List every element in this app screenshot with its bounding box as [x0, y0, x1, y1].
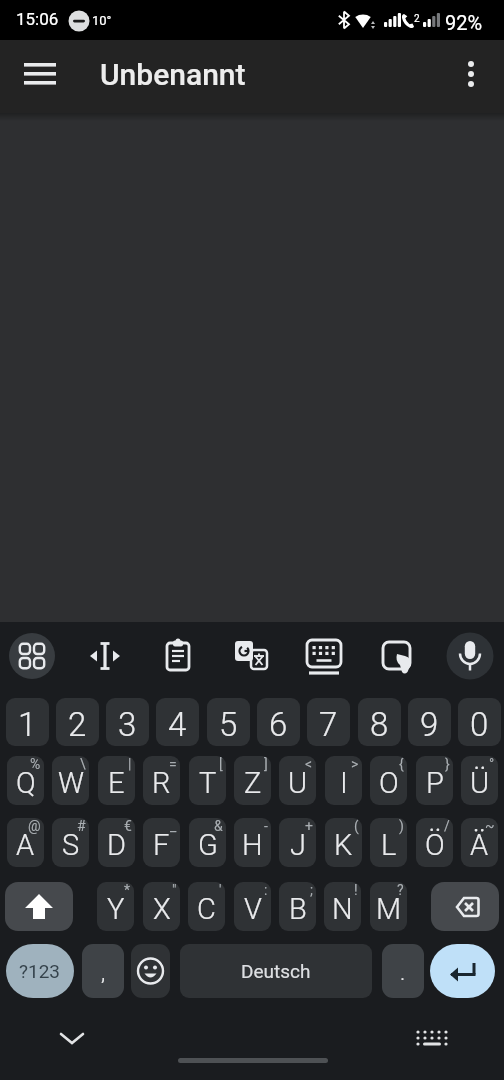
button[interactable]: C: [188, 882, 225, 931]
button[interactable]: .: [382, 944, 424, 998]
button[interactable]: M: [370, 882, 407, 931]
staticText: ]: [264, 756, 268, 772]
staticText: F: [153, 828, 170, 862]
button[interactable]: R: [143, 756, 180, 805]
staticText: P: [426, 766, 444, 800]
staticText: #: [77, 818, 86, 834]
button[interactable]: P: [416, 756, 453, 805]
button[interactable]: T: [189, 756, 226, 805]
staticText: 2: [68, 705, 87, 744]
button[interactable]: X: [143, 882, 180, 931]
staticText: C: [197, 892, 216, 926]
staticText: M: [376, 892, 402, 926]
button[interactable]: [16, 58, 64, 92]
button[interactable]: N: [324, 882, 361, 931]
staticText: -: [264, 818, 268, 834]
staticText: {: [399, 756, 404, 772]
staticText: O: [379, 766, 399, 800]
staticText: 5: [219, 705, 238, 744]
button[interactable]: 9: [408, 698, 451, 746]
button[interactable]: K: [325, 818, 362, 867]
button[interactable]: 2: [56, 698, 99, 746]
button[interactable]: U: [279, 756, 316, 805]
button[interactable]: A: [7, 818, 44, 867]
staticText: U: [288, 766, 308, 800]
button[interactable]: [5, 882, 73, 931]
button[interactable]: G: [189, 818, 226, 867]
button[interactable]: 8: [358, 698, 401, 746]
button[interactable]: [431, 882, 499, 931]
staticText: W: [58, 766, 84, 800]
button[interactable]: 3: [106, 698, 149, 746]
button[interactable]: [150, 628, 206, 684]
button[interactable]: [430, 944, 495, 998]
staticText: 10°: [92, 13, 112, 28]
button[interactable]: 4: [156, 698, 199, 746]
button[interactable]: [4, 628, 60, 684]
staticText: Ü: [470, 766, 490, 800]
button[interactable]: Y: [97, 882, 134, 931]
button[interactable]: ,: [82, 944, 124, 998]
button[interactable]: [296, 628, 352, 684]
button[interactable]: ?123: [6, 944, 74, 998]
staticText: S: [62, 828, 80, 862]
staticText: 6: [269, 705, 288, 744]
button[interactable]: [408, 1016, 456, 1060]
staticText: @: [28, 818, 41, 834]
button[interactable]: 1: [6, 698, 49, 746]
button[interactable]: Z: [234, 756, 271, 805]
button[interactable]: [48, 1016, 96, 1060]
staticText: I: [340, 766, 348, 800]
staticText: }: [445, 756, 450, 772]
staticText: 9: [420, 705, 439, 744]
button[interactable]: B: [279, 882, 316, 931]
staticText: J: [290, 828, 306, 862]
button[interactable]: [131, 944, 170, 998]
staticText: =: [169, 756, 177, 772]
button[interactable]: S: [52, 818, 89, 867]
button[interactable]: Q: [7, 756, 44, 805]
staticText: L: [381, 828, 397, 862]
staticText: (: [354, 818, 359, 834]
staticText: ": [172, 882, 177, 898]
button[interactable]: [369, 628, 425, 684]
staticText: :: [264, 882, 268, 898]
button[interactable]: J: [279, 818, 316, 867]
staticText: D: [107, 828, 127, 862]
button[interactable]: D: [98, 818, 135, 867]
staticText: Q: [16, 766, 36, 800]
button[interactable]: 6: [257, 698, 300, 746]
button[interactable]: 7: [307, 698, 350, 746]
staticText: 1: [18, 705, 37, 744]
staticText: %: [30, 756, 41, 772]
button[interactable]: W: [52, 756, 89, 805]
staticText: Y: [107, 892, 125, 926]
button[interactable]: E: [98, 756, 135, 805]
button[interactable]: F: [143, 818, 180, 867]
staticText: /: [444, 818, 450, 834]
button[interactable]: V: [234, 882, 271, 931]
button[interactable]: I: [325, 756, 362, 805]
staticText: !: [354, 882, 358, 898]
button[interactable]: Ä: [461, 818, 498, 867]
button[interactable]: Deutsch: [180, 944, 372, 998]
staticText: ?123: [19, 960, 61, 982]
button[interactable]: Ö: [416, 818, 453, 867]
button[interactable]: [223, 628, 279, 684]
button[interactable]: [442, 628, 498, 684]
staticText: 92%: [445, 11, 483, 34]
staticText: X: [153, 892, 171, 926]
button[interactable]: [451, 56, 491, 96]
button[interactable]: Ü: [461, 756, 498, 805]
button[interactable]: 0: [458, 698, 501, 746]
button[interactable]: L: [370, 818, 407, 867]
button[interactable]: O: [370, 756, 407, 805]
button[interactable]: 5: [207, 698, 250, 746]
button[interactable]: [77, 628, 133, 684]
staticText: 15:06: [16, 9, 59, 29]
staticText: ,: [101, 960, 106, 986]
button[interactable]: H: [234, 818, 271, 867]
staticText: €: [124, 818, 132, 834]
staticText: R: [152, 766, 171, 800]
